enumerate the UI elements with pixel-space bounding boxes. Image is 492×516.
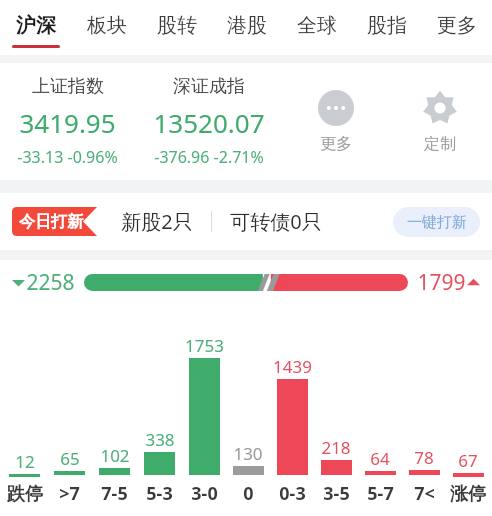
staticText: 2258: [26, 268, 75, 297]
button[interactable]: 沪深: [0, 0, 71, 55]
button[interactable]: 更多: [312, 84, 360, 160]
staticText: -376.96 -2.71%: [154, 146, 264, 168]
staticText: 5-3: [146, 481, 173, 506]
staticText: 3419.95: [19, 105, 116, 140]
button[interactable]: 130: [226, 442, 270, 506]
button[interactable]: 218: [314, 436, 358, 506]
staticText: 130: [233, 442, 263, 465]
button[interactable]: 上证指数: [0, 63, 134, 180]
staticText: 78: [414, 446, 434, 469]
staticText: 上证指数: [32, 75, 104, 98]
staticText: 3-0: [191, 481, 218, 506]
button[interactable]: 12: [2, 450, 47, 506]
staticText: 股转: [157, 13, 197, 38]
staticText: 67: [458, 449, 478, 472]
staticText: 1439: [273, 355, 312, 378]
staticText: 102: [100, 444, 130, 467]
button[interactable]: 338: [137, 428, 182, 506]
staticText: 全球: [297, 13, 337, 38]
button[interactable]: 更多: [422, 0, 492, 55]
staticText: 更多: [437, 13, 477, 38]
staticText: 7<: [414, 481, 435, 506]
staticText: 板块: [87, 13, 127, 38]
button[interactable]: 港股: [212, 0, 282, 55]
button[interactable]: 股转: [142, 0, 212, 55]
staticText: 7-5: [101, 481, 128, 506]
staticText: 65: [60, 447, 80, 470]
staticText: 沪深: [16, 13, 56, 38]
staticText: 64: [370, 447, 390, 470]
staticText: >7: [59, 481, 80, 506]
button[interactable]: 102: [92, 444, 137, 506]
staticText: 今日打新: [19, 212, 83, 232]
staticText: 218: [321, 436, 351, 459]
staticText: 0-3: [279, 481, 306, 506]
staticText: 3-5: [323, 481, 350, 506]
staticText: 一键打新: [407, 213, 467, 232]
staticText: 13520.07: [153, 105, 265, 140]
staticText: 深证成指: [173, 75, 245, 98]
button[interactable]: 78: [402, 446, 446, 506]
button[interactable]: 67: [446, 449, 490, 506]
staticText: 涨停: [450, 483, 486, 506]
staticText: 1753: [185, 334, 224, 357]
button[interactable]: 深证成指: [134, 63, 284, 180]
staticText: 可转债0只: [230, 208, 322, 235]
button[interactable]: 1439: [270, 355, 314, 506]
staticText: -33.13 -0.96%: [17, 146, 118, 168]
button[interactable]: 一键打新: [393, 207, 480, 237]
staticText: 股指: [367, 13, 407, 38]
staticText: 12: [15, 450, 35, 473]
button[interactable]: 64: [358, 447, 402, 506]
button[interactable]: 1753: [182, 334, 226, 506]
staticText: 338: [145, 428, 175, 451]
staticText: 新股2只: [121, 208, 193, 235]
button[interactable]: 今日打新: [12, 207, 97, 236]
staticText: 1799: [417, 268, 466, 297]
button[interactable]: 定制: [416, 84, 464, 160]
staticText: 5-7: [367, 481, 394, 506]
staticText: 定制: [424, 134, 456, 154]
button[interactable]: 全球: [282, 0, 352, 55]
button[interactable]: 65: [47, 447, 92, 506]
button[interactable]: 股指: [352, 0, 422, 55]
staticText: 港股: [227, 13, 267, 38]
staticText: 跌停: [7, 483, 43, 506]
staticText: 更多: [320, 134, 352, 154]
button[interactable]: 板块: [71, 0, 142, 55]
staticText: 0: [243, 481, 254, 506]
